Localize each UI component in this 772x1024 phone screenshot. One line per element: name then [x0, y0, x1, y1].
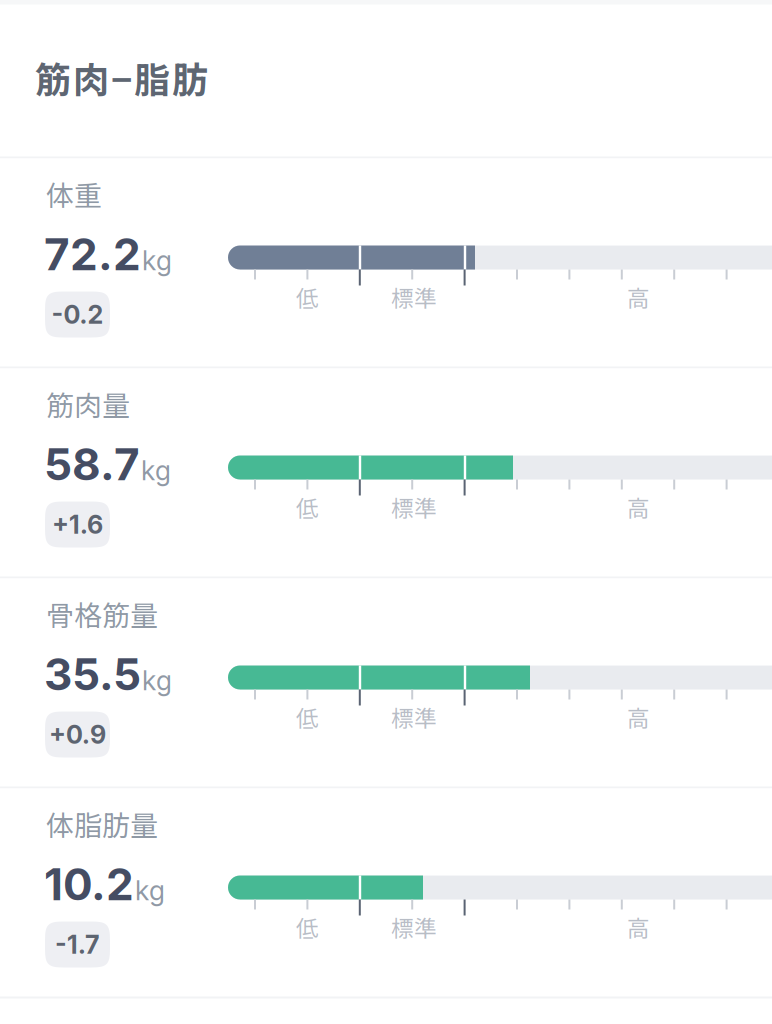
staticText: 35.5: [44, 647, 141, 701]
staticText: 低: [296, 280, 319, 313]
staticText: 標準: [391, 700, 437, 733]
staticText: 高: [627, 910, 650, 943]
button[interactable]: 体脂肪量: [0, 788, 772, 996]
staticText: 体重: [46, 173, 102, 214]
staticText: 標準: [391, 910, 437, 943]
staticText: 高: [627, 490, 650, 523]
staticText: 低: [296, 700, 319, 733]
staticText: 標準: [391, 280, 437, 313]
staticText: 低: [296, 910, 319, 943]
staticText: +0.9: [49, 719, 106, 750]
button[interactable]: 筋肉量: [0, 368, 772, 576]
staticText: kg: [135, 874, 165, 907]
staticText: kg: [141, 454, 171, 487]
staticText: +1.6: [52, 509, 103, 540]
staticText: kg: [142, 244, 172, 277]
staticText: -1.7: [55, 929, 100, 960]
staticText: 58.7: [44, 437, 140, 491]
staticText: kg: [142, 664, 172, 697]
staticText: 筋肉量: [46, 383, 130, 424]
staticText: -0.2: [51, 299, 103, 330]
staticText: 高: [627, 280, 650, 313]
staticText: 筋肉−脂肪: [35, 51, 208, 104]
button[interactable]: 骨格筋量: [0, 578, 772, 786]
staticText: 骨格筋量: [46, 593, 158, 634]
staticText: 標準: [391, 490, 437, 523]
staticText: 低: [296, 490, 319, 523]
staticText: 72.2: [44, 227, 141, 281]
staticText: 10.2: [44, 857, 134, 911]
staticText: 体脂肪量: [46, 803, 158, 844]
button[interactable]: 体重: [0, 158, 772, 366]
staticText: 高: [627, 700, 650, 733]
